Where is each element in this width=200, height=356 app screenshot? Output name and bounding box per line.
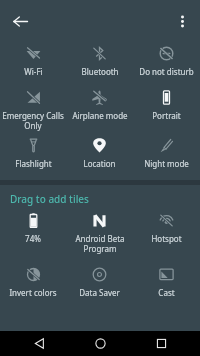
staticText: Hotspot <box>151 233 182 244</box>
staticText: Drag to add tiles <box>10 192 89 206</box>
staticText: Location <box>83 158 116 169</box>
staticText: Portrait <box>152 110 181 121</box>
staticText: Bluetooth <box>81 66 119 77</box>
button[interactable]: Bluetooth <box>66 45 133 78</box>
button[interactable]: Flashlight <box>0 137 66 170</box>
staticText: Night mode <box>144 158 189 169</box>
button[interactable]: Back <box>17 331 61 356</box>
staticText: Emergency Calls Only <box>2 110 64 131</box>
button[interactable]: Home <box>78 331 122 356</box>
staticText: 74% <box>25 233 41 244</box>
button[interactable]: Wi-Fi <box>0 45 66 78</box>
staticText: Airplane mode <box>72 110 128 121</box>
button[interactable]: 74% <box>0 212 66 245</box>
button[interactable]: Back <box>7 8 33 34</box>
button[interactable]: More options <box>169 8 195 34</box>
button[interactable]: Hotspot <box>133 212 200 245</box>
staticText: Cast <box>158 287 175 298</box>
staticText: Flashlight <box>15 158 52 169</box>
button[interactable]: Invert colors <box>0 266 66 299</box>
button[interactable]: Night mode <box>133 137 200 170</box>
staticText: Wi-Fi <box>24 66 43 77</box>
button[interactable]: Airplane mode <box>66 89 133 122</box>
button[interactable]: Do not disturb <box>133 45 200 78</box>
button[interactable]: Cast <box>133 266 200 299</box>
button[interactable]: Android Beta Program <box>66 212 133 255</box>
button[interactable]: Portrait <box>133 89 200 122</box>
staticText: Invert colors <box>9 287 57 298</box>
button[interactable]: Emergency Calls Only <box>0 89 66 132</box>
staticText: Do not disturb <box>139 66 194 77</box>
button[interactable]: Location <box>66 137 133 170</box>
staticText: Android Beta Program <box>75 233 125 254</box>
staticText: Data Saver <box>79 287 120 298</box>
button[interactable]: Data Saver <box>66 266 133 299</box>
button[interactable]: Recent apps <box>139 331 183 356</box>
